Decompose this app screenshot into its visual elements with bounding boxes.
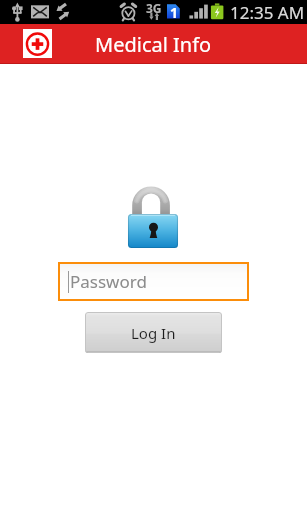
staticText: 1 — [170, 3, 179, 22]
button[interactable]: Password — [58, 262, 249, 301]
staticText: Password — [70, 270, 147, 293]
button[interactable]: Log In — [85, 312, 222, 353]
staticText: Medical Info — [95, 31, 212, 58]
staticText: 12:35 AM — [230, 1, 305, 24]
staticText: 3G — [146, 0, 162, 16]
staticText: Log In — [131, 323, 176, 343]
button[interactable]: App home — [23, 29, 52, 58]
